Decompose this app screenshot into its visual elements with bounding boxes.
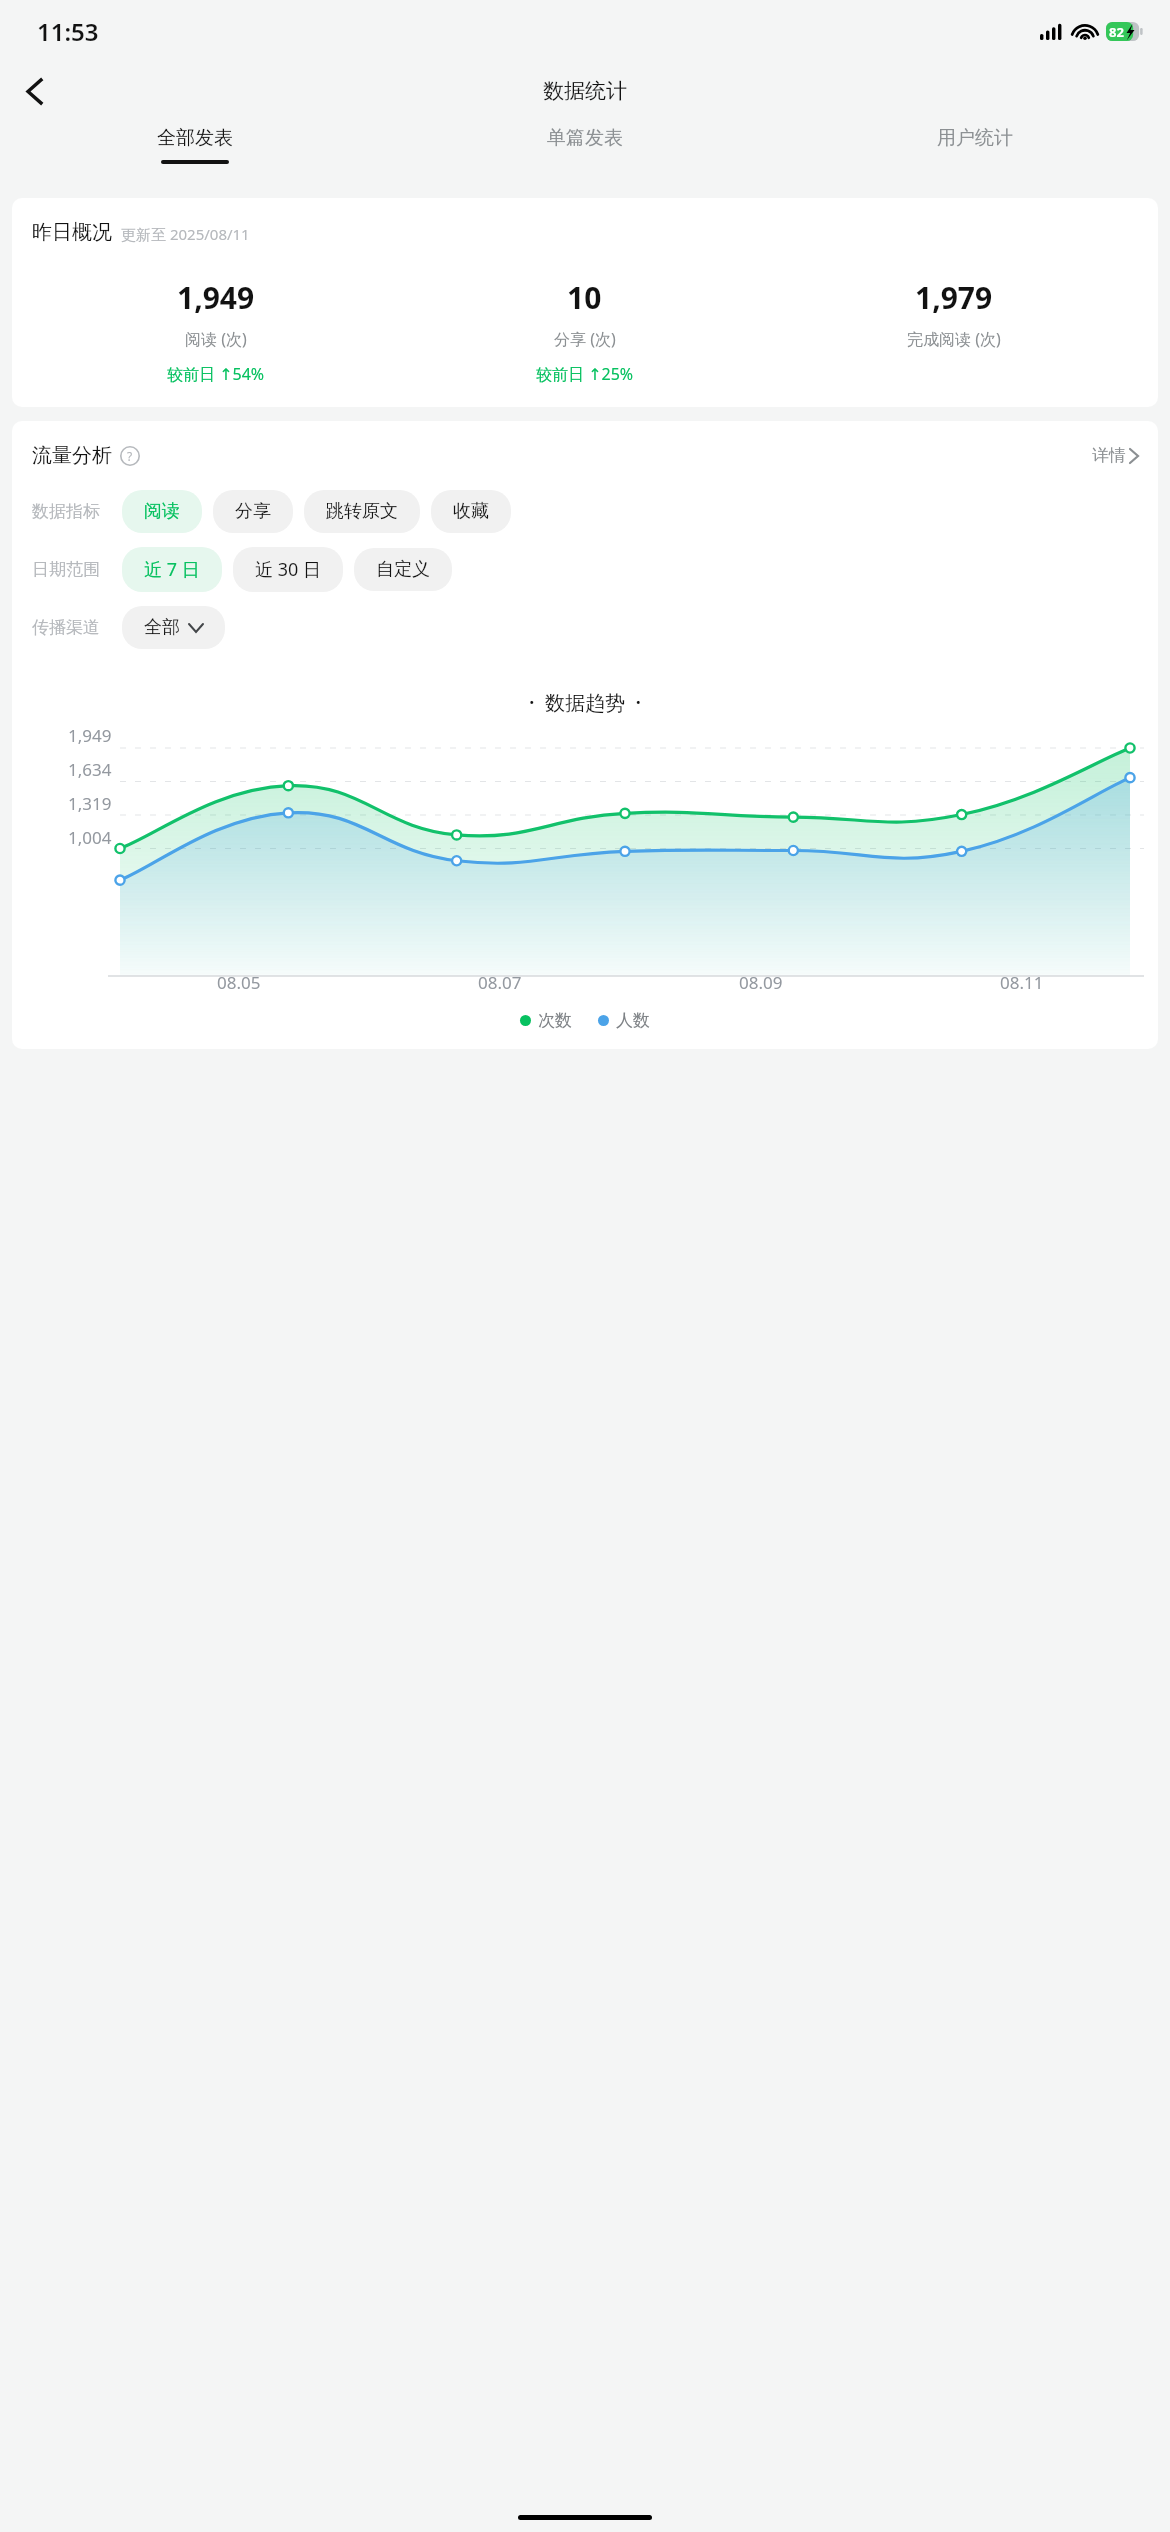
button[interactable]: 单篇发表 <box>390 120 780 178</box>
staticText: 1,319 <box>68 792 112 815</box>
staticText: 昨日概况 <box>32 220 112 245</box>
staticText: 分享 <box>235 500 271 523</box>
staticText: ? <box>127 448 133 464</box>
staticText: 近 30 日 <box>255 557 321 582</box>
staticText: 用户统计 <box>937 126 1013 150</box>
staticText: 1,979 <box>915 277 993 318</box>
button[interactable]: Back <box>12 69 56 113</box>
button[interactable]: 全部发表 <box>0 120 390 178</box>
staticText: 更新至 2025/08/11 <box>121 224 250 244</box>
staticText: 跳转原文 <box>326 500 398 523</box>
staticText: 全部发表 <box>157 126 233 150</box>
staticText: 数据指标 <box>32 501 100 522</box>
staticText: 单篇发表 <box>547 126 623 150</box>
staticText: 08.09 <box>739 971 783 994</box>
staticText: 传播渠道 <box>32 617 100 638</box>
staticText: 日期范围 <box>32 559 100 580</box>
button[interactable]: 近 7 日 <box>122 547 222 592</box>
staticText: 82 <box>1109 23 1124 41</box>
staticText: 自定义 <box>376 558 430 581</box>
button[interactable]: 分享 <box>213 490 293 533</box>
staticText: 08.05 <box>217 971 261 994</box>
button[interactable]: 用户统计 <box>780 120 1170 178</box>
staticText: 完成阅读 (次) <box>907 328 1001 350</box>
button[interactable]: 收藏 <box>431 490 511 533</box>
staticText: 1,949 <box>68 724 112 747</box>
staticText: 较前日 ↑54% <box>167 363 265 385</box>
staticText: 1,004 <box>68 826 112 849</box>
staticText: 分享 (次) <box>554 328 616 350</box>
staticText: 11:53 <box>37 15 99 48</box>
staticText: 数据统计 <box>543 78 627 104</box>
staticText: 1,634 <box>68 758 112 781</box>
staticText: · 数据趋势 · <box>12 689 1158 716</box>
button[interactable]: 详情 <box>1092 445 1138 466</box>
staticText: 流量分析 <box>32 443 112 468</box>
staticText: 1,949 <box>177 277 255 318</box>
staticText: 阅读 <box>144 500 180 523</box>
button[interactable]: Help <box>120 446 140 466</box>
staticText: 近 7 日 <box>144 557 200 582</box>
staticText: 较前日 ↑25% <box>536 363 634 385</box>
staticText: 次数 <box>538 1010 572 1031</box>
staticText: 阅读 (次) <box>185 328 247 350</box>
button[interactable]: 跳转原文 <box>304 490 420 533</box>
button[interactable]: 阅读 <box>122 490 202 533</box>
button[interactable]: 近 30 日 <box>233 547 343 592</box>
staticText: 08.11 <box>1000 971 1044 994</box>
staticText: 详情 <box>1092 445 1126 466</box>
staticText: 08.07 <box>478 971 522 994</box>
staticText: 人数 <box>616 1010 650 1031</box>
staticText: 全部 <box>144 616 180 639</box>
staticText: 收藏 <box>453 500 489 523</box>
button[interactable]: 全部 <box>122 606 225 649</box>
button[interactable]: 自定义 <box>354 548 452 591</box>
staticText: 10 <box>567 277 602 318</box>
